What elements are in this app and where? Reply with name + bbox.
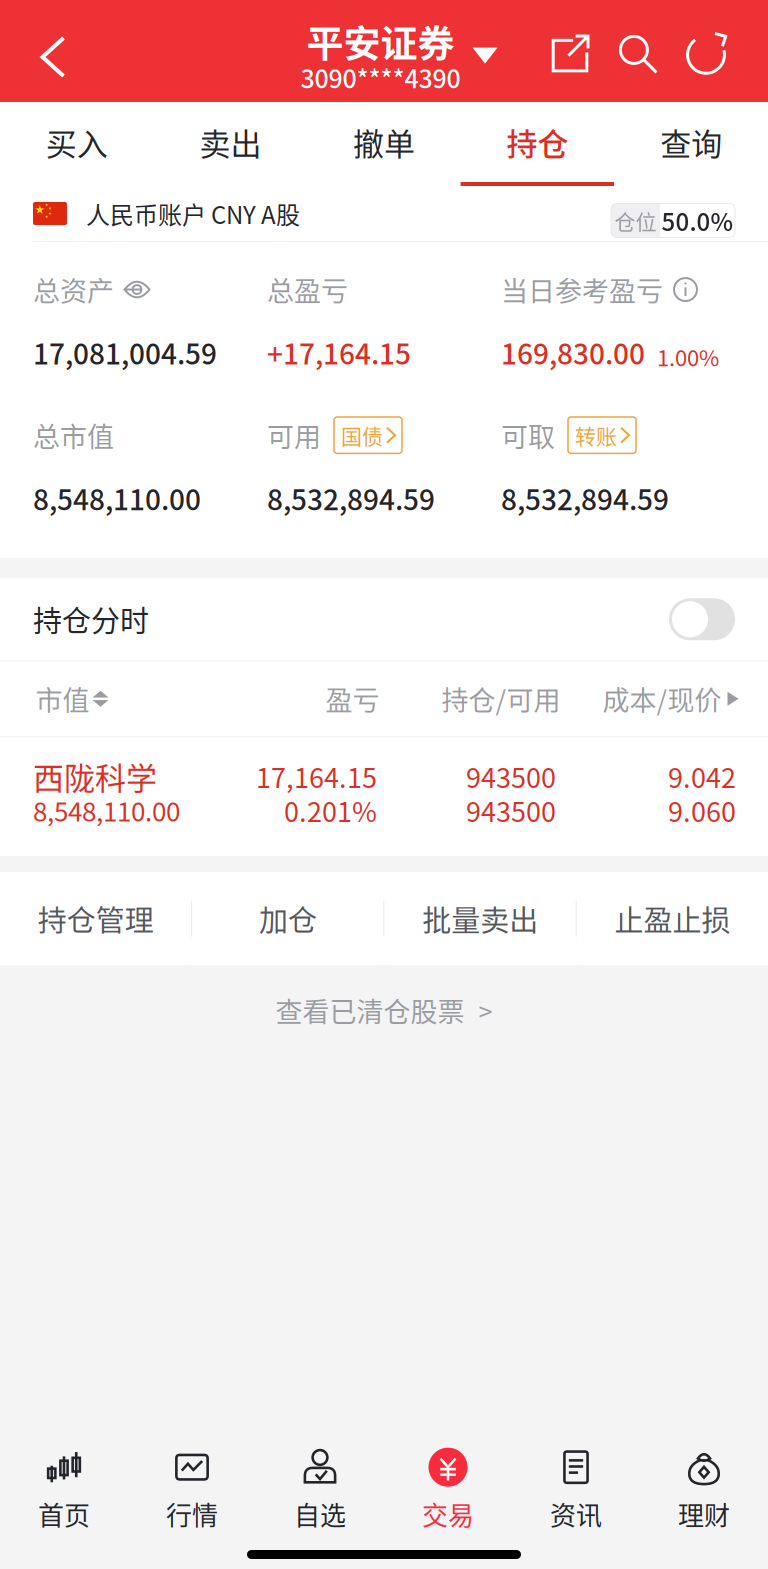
staticText: 市值 bbox=[35, 679, 89, 718]
staticText: 国债 bbox=[341, 420, 383, 450]
button[interactable]: 国债 bbox=[334, 417, 402, 453]
button[interactable]: 撤单 bbox=[307, 102, 461, 186]
button[interactable]: Share bbox=[536, 15, 604, 93]
staticText: > bbox=[478, 992, 492, 1028]
staticText: 仓位 bbox=[614, 205, 656, 236]
staticText: 持仓 bbox=[507, 120, 569, 164]
staticText: 成本/现价 bbox=[602, 679, 721, 718]
button[interactable]: 批量卖出 bbox=[384, 872, 576, 965]
button[interactable]: 加仓 bbox=[192, 872, 383, 965]
staticText: 943500 bbox=[466, 757, 556, 796]
button[interactable]: Back bbox=[0, 12, 89, 90]
staticText: 可用 bbox=[267, 416, 321, 455]
button[interactable]: 止盈止损 bbox=[577, 872, 768, 965]
staticText: 行情 bbox=[166, 1495, 218, 1533]
staticText: 查询 bbox=[660, 120, 722, 164]
staticText: 人民币账户 CNY A股 bbox=[86, 196, 300, 231]
staticText: 9.042 bbox=[668, 757, 736, 796]
staticText: 西陇科学 bbox=[33, 754, 157, 799]
staticText: 9.060 bbox=[668, 791, 736, 830]
button[interactable]: 西陇科学 bbox=[0, 737, 768, 856]
button[interactable]: 资讯 bbox=[512, 1440, 640, 1540]
staticText: 理财 bbox=[678, 1495, 730, 1533]
staticText: 自选 bbox=[294, 1495, 346, 1533]
staticText: 17,164.15 bbox=[256, 757, 377, 796]
staticText: 可取 bbox=[501, 416, 555, 455]
staticText: 首页 bbox=[38, 1495, 90, 1533]
button[interactable]: 买入 bbox=[0, 102, 154, 186]
button[interactable]: 行情 bbox=[128, 1440, 256, 1540]
staticText: 盈亏 bbox=[325, 679, 379, 718]
staticText: 转账 bbox=[575, 420, 617, 450]
button[interactable]: 持仓管理 bbox=[0, 872, 191, 965]
staticText: 50.0% bbox=[661, 203, 733, 238]
staticText: 总盈亏 bbox=[267, 270, 348, 309]
staticText: 买入 bbox=[46, 120, 108, 164]
staticText: 持仓/可用 bbox=[441, 679, 560, 718]
staticText: 3090****4390 bbox=[300, 59, 460, 95]
staticText: 止盈止损 bbox=[614, 898, 730, 940]
staticText: 资讯 bbox=[550, 1495, 602, 1533]
staticText: 总市值 bbox=[33, 416, 114, 455]
staticText: 1.00% bbox=[657, 341, 719, 373]
button[interactable]: 首页 bbox=[0, 1440, 128, 1540]
staticText: 持仓分时 bbox=[33, 598, 149, 640]
staticText: 0.201% bbox=[284, 791, 377, 830]
staticText: 8,532,894.59 bbox=[501, 478, 669, 518]
staticText: 8,532,894.59 bbox=[267, 478, 435, 518]
button[interactable]: 查询 bbox=[614, 102, 768, 186]
button[interactable]: Toggle intraday chart bbox=[669, 598, 735, 640]
staticText: 平安证券 bbox=[306, 15, 454, 68]
staticText: 卖出 bbox=[199, 120, 261, 164]
staticText: 持仓管理 bbox=[38, 898, 154, 940]
button[interactable]: 卖出 bbox=[154, 102, 307, 186]
button[interactable]: 自选 bbox=[256, 1440, 384, 1540]
staticText: 当日参考盈亏 bbox=[501, 270, 663, 309]
staticText: 交易 bbox=[422, 1495, 474, 1533]
staticText: 加仓 bbox=[259, 898, 317, 940]
staticText: 943500 bbox=[466, 791, 556, 830]
staticText: 169,830.00 bbox=[501, 332, 645, 373]
staticText: 8,548,110.00 bbox=[33, 791, 180, 829]
staticText: 撤单 bbox=[353, 120, 415, 164]
button[interactable]: 理财 bbox=[640, 1440, 768, 1540]
button[interactable]: 交易 bbox=[384, 1440, 512, 1540]
staticText: 总资产 bbox=[33, 270, 114, 309]
staticText: +17,164.15 bbox=[267, 332, 411, 373]
button[interactable]: 查看已清仓股票 bbox=[275, 965, 492, 1055]
staticText: 批量卖出 bbox=[422, 898, 538, 940]
button[interactable]: Search bbox=[604, 15, 672, 93]
button[interactable]: 持仓 bbox=[461, 102, 614, 186]
staticText: 17,081,004.59 bbox=[33, 332, 217, 373]
button[interactable]: 转账 bbox=[568, 417, 636, 453]
staticText: 查看已清仓股票 bbox=[275, 991, 464, 1030]
button[interactable]: Refresh bbox=[672, 15, 740, 93]
button[interactable]: 平安证券 bbox=[300, 15, 497, 95]
staticText: 8,548,110.00 bbox=[33, 478, 201, 518]
